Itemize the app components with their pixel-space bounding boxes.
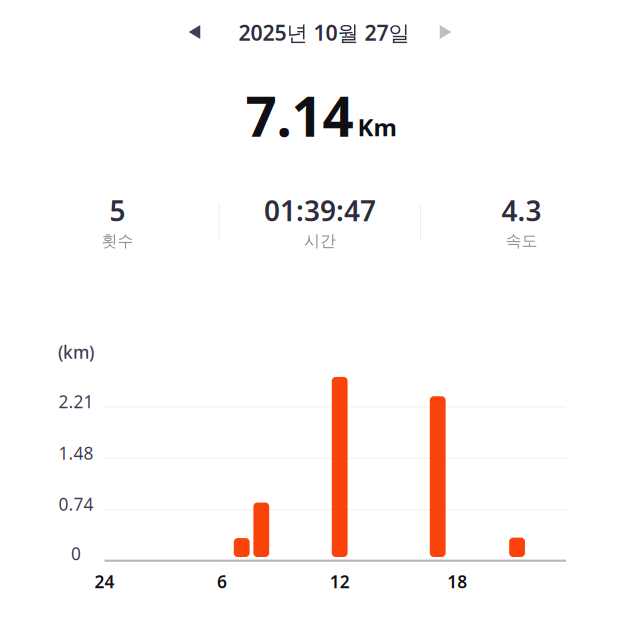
button[interactable]: Next day: [422, 9, 468, 55]
staticText: 6: [217, 570, 227, 593]
staticText: 01:39:47: [264, 192, 376, 229]
staticText: 4.3: [501, 192, 541, 229]
staticText: 속도: [505, 231, 537, 251]
staticText: 2.21: [58, 390, 93, 413]
staticText: 0.74: [58, 492, 93, 515]
staticText: 1.48: [58, 441, 93, 464]
staticText: 5: [109, 192, 125, 229]
staticText: 18: [447, 570, 467, 593]
staticText: 횟수: [101, 231, 133, 251]
staticText: 12: [330, 570, 350, 593]
staticText: 24: [94, 570, 114, 593]
staticText: 7.14: [245, 79, 353, 152]
staticText: Km: [357, 111, 396, 143]
button[interactable]: Previous day: [171, 9, 217, 55]
staticText: 0: [71, 542, 81, 565]
button[interactable]: 2025년 10월 27일: [231, 12, 417, 52]
staticText: 시간: [304, 231, 336, 251]
staticText: (km): [58, 340, 94, 363]
staticText: 2025년 10월 27일: [238, 18, 409, 47]
